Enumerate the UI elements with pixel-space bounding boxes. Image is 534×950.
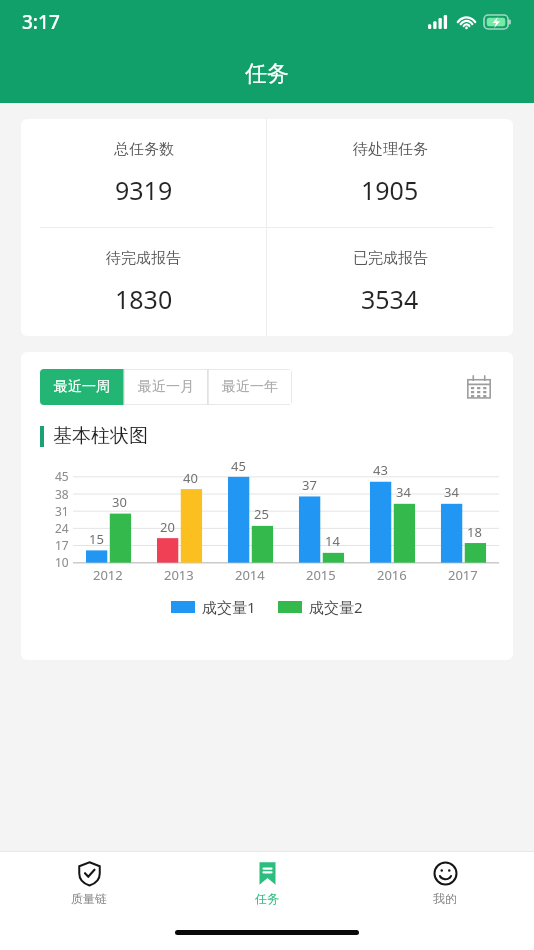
button[interactable]: 成交量1 xyxy=(171,597,256,617)
button[interactable]: 选择日期 xyxy=(464,372,494,402)
staticText: 43 xyxy=(373,461,388,479)
staticText: 最近一年 xyxy=(222,378,278,396)
staticText: 40 xyxy=(183,469,198,487)
staticText: 2012 xyxy=(93,566,123,584)
staticText: 任务 xyxy=(255,891,279,906)
button[interactable]: 已完成报告 xyxy=(267,228,513,336)
staticText: 成交量1 xyxy=(202,597,256,617)
button[interactable]: 任务 xyxy=(178,852,356,914)
button[interactable]: 质量链 xyxy=(0,852,178,914)
button[interactable]: 最近一年 xyxy=(208,369,292,405)
staticText: 1830 xyxy=(115,282,173,316)
staticText: 25 xyxy=(254,505,269,523)
staticText: 2015 xyxy=(306,566,336,584)
staticText: 18 xyxy=(467,523,482,541)
staticText: 3534 xyxy=(361,282,419,316)
staticText: 2014 xyxy=(235,566,265,584)
button[interactable]: 最近一月 xyxy=(124,369,208,405)
staticText: 我的 xyxy=(433,891,457,906)
staticText: 总任务数 xyxy=(114,140,174,159)
button[interactable]: 待处理任务 xyxy=(267,119,513,227)
staticText: 最近一月 xyxy=(138,378,194,396)
staticText: 2017 xyxy=(448,566,478,584)
button[interactable]: 最近一周 xyxy=(40,369,124,405)
staticText: 31 xyxy=(55,503,69,519)
staticText: 15 xyxy=(89,530,104,548)
button[interactable]: 我的 xyxy=(356,852,534,914)
staticText: 17 xyxy=(55,537,69,553)
staticText: 45 xyxy=(55,468,69,484)
staticText: 已完成报告 xyxy=(353,249,428,268)
staticText: 14 xyxy=(325,532,340,550)
staticText: 1905 xyxy=(361,173,419,207)
staticText: 3:17 xyxy=(22,9,60,35)
staticText: 质量链 xyxy=(71,891,107,906)
staticText: 9319 xyxy=(115,173,173,207)
staticText: 38 xyxy=(55,486,69,502)
button[interactable]: 成交量2 xyxy=(278,597,363,617)
staticText: 34 xyxy=(396,483,411,501)
staticText: 基本柱状图 xyxy=(53,424,148,448)
staticText: 2013 xyxy=(164,566,194,584)
staticText: 34 xyxy=(444,483,459,501)
staticText: 最近一周 xyxy=(54,378,110,396)
staticText: 20 xyxy=(160,518,175,536)
staticText: 待完成报告 xyxy=(106,249,181,268)
button[interactable]: 待完成报告 xyxy=(21,228,266,336)
staticText: 45 xyxy=(231,457,246,475)
staticText: 30 xyxy=(112,493,127,511)
staticText: 任务 xyxy=(245,60,289,88)
button[interactable]: 总任务数 xyxy=(21,119,266,227)
staticText: 2016 xyxy=(377,566,407,584)
staticText: 10 xyxy=(55,554,69,570)
staticText: 待处理任务 xyxy=(353,140,428,159)
staticText: 24 xyxy=(55,520,69,536)
staticText: 成交量2 xyxy=(309,597,363,617)
staticText: 37 xyxy=(302,476,317,494)
